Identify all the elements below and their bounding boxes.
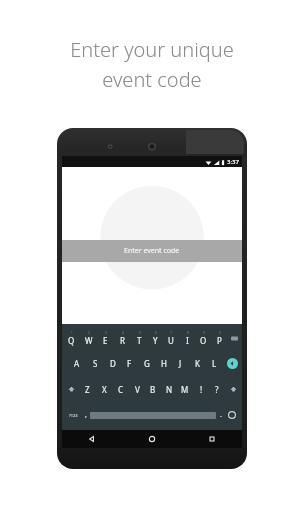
staticText: C: [118, 384, 124, 395]
button[interactable]: 8: [179, 326, 195, 351]
staticText: 8: [187, 331, 189, 335]
staticText: S: [93, 358, 98, 369]
staticText: ?123: [69, 413, 78, 418]
button[interactable]: Emoji: [225, 402, 239, 428]
staticText: L: [212, 358, 217, 369]
staticText: H: [161, 358, 167, 369]
button[interactable]: S: [86, 351, 104, 376]
staticText: K: [195, 358, 200, 369]
staticText: E: [103, 335, 108, 346]
staticText: T: [137, 335, 142, 346]
staticText: !: [200, 384, 203, 395]
staticText: R: [120, 335, 125, 346]
button[interactable]: G: [138, 351, 155, 376]
button[interactable]: ,: [81, 402, 90, 428]
button[interactable]: J: [172, 351, 189, 376]
staticText: Enter event code: [124, 246, 180, 256]
button[interactable]: Z: [79, 376, 96, 402]
staticText: event code: [102, 66, 202, 93]
staticText: A: [74, 358, 80, 369]
staticText: 0: [219, 331, 221, 335]
button[interactable]: V: [129, 376, 145, 402]
button[interactable]: L: [206, 351, 223, 376]
button[interactable]: 4: [114, 326, 131, 351]
button[interactable]: 3: [97, 326, 114, 351]
button[interactable]: Backspace: [227, 326, 241, 351]
staticText: V: [135, 384, 140, 395]
staticText: 1: [71, 331, 73, 335]
staticText: I: [186, 335, 189, 346]
button[interactable]: Shift: [225, 376, 241, 402]
button[interactable]: Home: [122, 430, 182, 448]
button[interactable]: D: [104, 351, 121, 376]
staticText: F: [127, 358, 132, 369]
button[interactable]: ?: [209, 376, 225, 402]
button[interactable]: Shift: [63, 376, 79, 402]
button[interactable]: X: [96, 376, 113, 402]
staticText: 9: [203, 331, 205, 335]
button[interactable]: ?123: [65, 402, 81, 428]
button[interactable]: .: [216, 402, 225, 428]
button[interactable]: C: [113, 376, 129, 402]
staticText: 7: [170, 331, 172, 335]
button[interactable]: B: [145, 376, 161, 402]
button[interactable]: 9: [195, 326, 211, 351]
button[interactable]: 0: [211, 326, 227, 351]
staticText: 2: [88, 331, 90, 335]
button[interactable]: Recents: [182, 430, 242, 448]
staticText: ,: [85, 410, 87, 420]
button[interactable]: N: [161, 376, 177, 402]
staticText: D: [110, 358, 116, 369]
staticText: P: [217, 335, 222, 346]
staticText: N: [166, 384, 173, 395]
staticText: ?: [215, 384, 219, 395]
staticText: 3:37: [227, 158, 239, 166]
button[interactable]: F: [121, 351, 138, 376]
button[interactable]: 6: [147, 326, 163, 351]
staticText: O: [200, 335, 207, 346]
staticText: X: [102, 384, 107, 395]
button[interactable]: 5: [131, 326, 147, 351]
staticText: Y: [153, 335, 158, 346]
button[interactable]: Enter: [223, 351, 241, 376]
button[interactable]: Back: [62, 430, 122, 448]
staticText: 3: [105, 331, 107, 335]
staticText: G: [144, 358, 150, 369]
staticText: 4: [122, 331, 124, 335]
button[interactable]: K: [189, 351, 206, 376]
button[interactable]: H: [155, 351, 172, 376]
staticText: Z: [85, 384, 90, 395]
staticText: U: [168, 335, 174, 346]
button[interactable]: M: [177, 376, 193, 402]
staticText: 5: [139, 331, 141, 335]
button[interactable]: Enter event code: [62, 240, 242, 262]
button[interactable]: !: [193, 376, 209, 402]
button[interactable]: 2: [80, 326, 97, 351]
staticText: .: [220, 410, 222, 420]
staticText: 6: [155, 331, 157, 335]
button[interactable]: 7: [163, 326, 179, 351]
staticText: M: [181, 384, 189, 395]
staticText: W: [85, 335, 93, 346]
staticText: Q: [68, 335, 75, 346]
staticText: Enter your unique: [70, 36, 234, 63]
staticText: J: [179, 358, 182, 369]
button[interactable]: A: [68, 351, 86, 376]
staticText: B: [150, 384, 156, 395]
button[interactable]: 1: [63, 326, 80, 351]
